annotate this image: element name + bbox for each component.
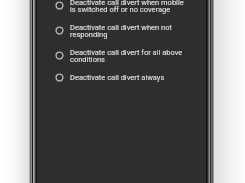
staticText: Deactivate call divert always: [70, 73, 165, 82]
staticText: Deactivate call divert when mobile is sw…: [70, 0, 188, 14]
button[interactable]: Deactivate call divert when mobile is sw…: [37, 0, 206, 18]
staticText: Deactivate call divert when not respondi…: [70, 23, 188, 39]
staticText: Deactivate call divert for all above con…: [70, 48, 188, 64]
button[interactable]: Deactivate call divert for all above con…: [37, 44, 206, 67]
button[interactable]: Deactivate call divert when not respondi…: [37, 18, 206, 43]
button[interactable]: Deactivate call divert always: [37, 67, 206, 88]
